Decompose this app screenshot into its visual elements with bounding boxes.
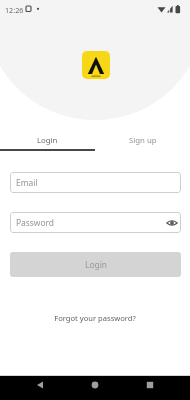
staticText: Password — [16, 217, 54, 228]
button[interactable]: Home — [86, 376, 104, 394]
button[interactable]: Password — [10, 212, 181, 233]
other: App logo — [82, 51, 110, 79]
button[interactable]: Email — [10, 172, 181, 193]
button[interactable]: Forgot your password? — [35, 311, 155, 325]
staticText: 12:26 — [5, 5, 24, 15]
button[interactable]: Recent apps — [141, 376, 159, 394]
staticText: Sign up — [129, 135, 157, 146]
staticText: Forgot your password? — [54, 313, 136, 323]
button[interactable]: Back — [31, 376, 49, 394]
staticText: Login — [37, 135, 58, 146]
button[interactable]: Login — [0, 130, 95, 151]
staticText: Email — [16, 177, 38, 188]
button[interactable]: Login — [10, 252, 181, 277]
staticText: Login — [85, 259, 107, 270]
button[interactable]: Show password — [163, 214, 180, 231]
button[interactable]: Sign up — [95, 130, 190, 151]
